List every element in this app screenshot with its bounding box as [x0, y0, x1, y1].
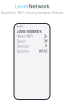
staticText: 9:41 [16, 25, 22, 28]
staticText: Guest [16, 40, 25, 43]
staticText: Level [14, 3, 27, 9]
staticText: Seamless WiFi sharing between friends [0, 11, 63, 15]
staticText: On [43, 35, 47, 38]
staticText: Level Network [16, 29, 41, 34]
staticText: Off [43, 40, 47, 43]
staticText: WPA3 [38, 50, 47, 53]
staticText: 12 [44, 45, 47, 48]
staticText: Security [16, 50, 29, 53]
staticText: Network [28, 3, 49, 9]
staticText: Home WiFi [16, 35, 33, 38]
staticText: Devices [16, 45, 29, 48]
